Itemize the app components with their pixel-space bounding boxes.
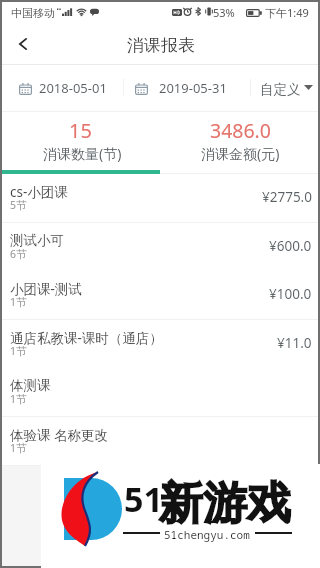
- staticText: ¥100.0: [269, 285, 312, 303]
- staticText: 通店私教课-课时（通店）: [10, 329, 163, 347]
- staticText: 新游戏: [159, 476, 291, 531]
- staticText: 1节: [10, 344, 27, 358]
- button[interactable]: 自定义: [256, 71, 318, 105]
- staticText: 6节: [10, 247, 27, 261]
- staticText: 2019-05-31: [159, 79, 227, 97]
- staticText: 51: [124, 476, 163, 522]
- button[interactable]: 15: [2, 112, 160, 174]
- staticText: 消课数量(节): [43, 144, 122, 163]
- button[interactable]: 体验课 名称更改: [2, 417, 318, 466]
- staticText: 1节: [10, 441, 27, 455]
- staticText: 体验课 名称更改: [10, 426, 109, 444]
- staticText: 51chengyu.com: [164, 527, 250, 542]
- staticText: 1节: [10, 392, 27, 406]
- button[interactable]: 2018-05-01: [12, 71, 117, 105]
- staticText: 自定义: [260, 81, 301, 98]
- staticText: ¥2775.0: [262, 188, 312, 206]
- staticText: 消课报表: [127, 35, 195, 56]
- staticText: cs-小团课: [10, 183, 68, 201]
- button[interactable]: cs-小团课: [2, 174, 318, 223]
- staticText: 53%: [213, 5, 235, 20]
- button[interactable]: 测试小可: [2, 223, 318, 272]
- button[interactable]: 3486.0: [160, 112, 318, 174]
- staticText: 测试小可: [10, 232, 64, 249]
- staticText: 3486.0: [210, 117, 271, 144]
- staticText: 体测课: [10, 377, 51, 394]
- staticText: ¥600.0: [269, 237, 312, 255]
- staticText: 中国移动: [11, 6, 55, 20]
- button[interactable]: 体测课: [2, 368, 318, 417]
- button[interactable]: 小团课-测试: [2, 271, 318, 320]
- staticText: 2018-05-01: [39, 79, 107, 97]
- staticText: ¥11.0: [277, 334, 312, 352]
- staticText: 下午1:49: [265, 5, 309, 20]
- staticText: 1节: [10, 295, 27, 309]
- button[interactable]: 通店私教课-课时（通店）: [2, 320, 318, 369]
- button[interactable]: Back: [5, 22, 41, 65]
- staticText: 小团课-测试: [10, 280, 82, 298]
- button[interactable]: 2019-05-31: [130, 71, 235, 105]
- staticText: 15: [69, 117, 92, 144]
- staticText: 5节: [10, 198, 27, 212]
- staticText: 消课金额(元): [201, 144, 280, 163]
